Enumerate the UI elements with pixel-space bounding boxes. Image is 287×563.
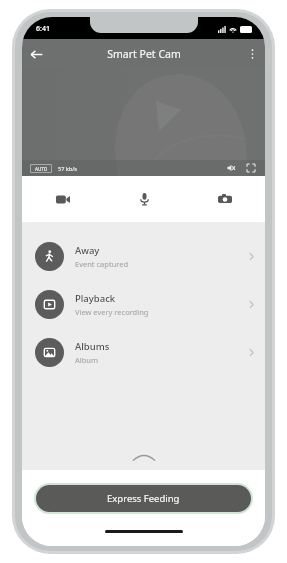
button[interactable]: Mute sound [224,161,238,175]
button[interactable]: Away [22,232,265,280]
staticText: Album [75,355,98,365]
button[interactable]: Talk [129,184,159,214]
staticText: 6:41 [36,24,50,34]
staticText: Playback [75,292,116,305]
staticText: Albums [75,340,110,353]
button[interactable]: Auto quality [29,163,53,174]
button[interactable]: Record video [48,184,78,214]
button[interactable]: More options [239,41,265,67]
button[interactable]: Fullscreen [244,161,258,175]
staticText: Event captured [75,259,129,269]
staticText: Away [75,244,100,257]
button[interactable]: Back [22,40,50,68]
button[interactable]: Take photo [210,184,240,214]
staticText: Express Feeding [107,492,180,505]
staticText: AUTO [35,166,48,172]
staticText: 57 kb/s [58,165,77,172]
button[interactable]: Playback [22,280,265,328]
button[interactable]: Expand sheet [127,450,161,464]
staticText: View every recording [75,307,149,317]
button[interactable]: Albums [22,328,265,376]
button[interactable]: Express Feeding [36,485,251,512]
staticText: Smart Pet Cam [107,47,181,61]
